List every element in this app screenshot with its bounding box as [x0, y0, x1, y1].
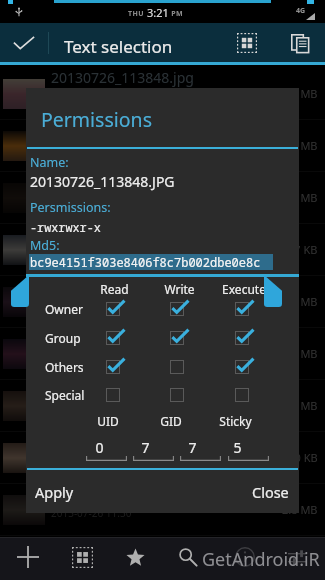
- staticText: -rwxrwxr-x: [30, 219, 101, 235]
- staticText: 2013-07-26 11:32: [51, 402, 132, 416]
- staticText: Apply: [35, 482, 74, 502]
- button[interactable]: Group write: [164, 325, 190, 351]
- staticText: Persmissions:: [30, 199, 111, 216]
- staticText: Close: [252, 482, 289, 502]
- button[interactable]: Special execute: [229, 382, 255, 408]
- button[interactable]: Copy: [279, 23, 321, 63]
- staticText: Permissions: [41, 106, 153, 133]
- button[interactable]: Others execute: [229, 354, 255, 380]
- staticText: 2013-07-26 11:37: [51, 142, 132, 156]
- button[interactable]: Select all: [226, 23, 268, 63]
- button[interactable]: Special read: [100, 382, 126, 408]
- staticText: Text selection: [64, 35, 173, 57]
- staticText: 3.6 MB: [282, 294, 318, 309]
- staticText: 7: [188, 438, 197, 456]
- staticText: 2013-07-26 11:35: [51, 246, 132, 260]
- button[interactable]: Search: [167, 536, 209, 578]
- staticText: 5: [233, 438, 242, 456]
- staticText: 20130726_113845.jpg: [51, 224, 194, 243]
- staticText: Execute: [222, 281, 266, 297]
- staticText: Read: [100, 281, 129, 297]
- staticText: Name:: [30, 154, 69, 171]
- staticText: GID: [160, 413, 182, 429]
- staticText: 0: [95, 438, 104, 456]
- staticText: 2.2 MB: [282, 190, 318, 205]
- staticText: bc9e4151f303e8406f8c7b002dbe0e8c: [30, 254, 261, 270]
- staticText: 97 KB: [288, 242, 318, 257]
- staticText: Sticky: [219, 413, 252, 429]
- button[interactable]: Special write: [164, 382, 190, 408]
- button[interactable]: Group read: [100, 325, 126, 351]
- staticText: 2.8 MB: [282, 502, 318, 517]
- button[interactable]: [84, 434, 128, 462]
- staticText: 3:21: [147, 5, 169, 20]
- staticText: 7: [141, 438, 150, 456]
- button[interactable]: Others write: [164, 354, 190, 380]
- button[interactable]: Apply: [26, 470, 163, 513]
- staticText: 2.5 MB: [282, 346, 318, 361]
- staticText: 20130726_113842.jpg: [51, 380, 194, 399]
- button[interactable]: Owner execute: [229, 296, 255, 322]
- staticText: UID: [97, 413, 119, 429]
- staticText: Others: [45, 359, 84, 375]
- staticText: PM: [169, 9, 183, 19]
- staticText: 20130726_113843.jpg: [51, 328, 194, 347]
- staticText: 20130726_113840.jpg: [51, 484, 194, 503]
- staticText: Write: [164, 281, 195, 297]
- button[interactable]: Select all: [61, 536, 103, 578]
- button[interactable]: Done: [2, 23, 46, 63]
- staticText: 970 KB: [282, 450, 318, 465]
- staticText: Owner: [45, 301, 83, 317]
- staticText: 2013-07-26 11:33: [51, 350, 132, 364]
- staticText: Group: [45, 330, 81, 346]
- button[interactable]: Favorites: [114, 536, 156, 578]
- button[interactable]: Others read: [100, 354, 126, 380]
- staticText: 4G: [296, 6, 306, 16]
- staticText: 2013-07-26 11:36: [51, 194, 132, 208]
- button[interactable]: [179, 434, 223, 462]
- button[interactable]: Group execute: [229, 325, 255, 351]
- staticText: 2013-07-26 11:34: [51, 298, 132, 312]
- staticText: 20130726_113847.jpg: [51, 120, 194, 139]
- staticText: 20130726_113846.jpg: [51, 172, 194, 191]
- staticText: Md5:: [30, 237, 60, 254]
- button[interactable]: Close: [163, 470, 300, 513]
- button[interactable]: Owner write: [164, 296, 190, 322]
- button[interactable]: Info: [224, 536, 266, 578]
- staticText: 20130726_113844.jpg: [51, 276, 194, 295]
- staticText: 2013-07-26 11:30: [51, 506, 132, 520]
- staticText: THU: [128, 9, 147, 19]
- button[interactable]: Owner read: [100, 296, 126, 322]
- staticText: GetAndroid.iR: [202, 547, 320, 571]
- button[interactable]: Settings: [276, 536, 318, 578]
- staticText: Special: [45, 387, 85, 403]
- staticText: 2013-07-26 11:31: [51, 454, 132, 468]
- staticText: 1.7 MB: [282, 86, 318, 101]
- staticText: 20130726_113848.JPG: [30, 172, 175, 191]
- staticText: 1.1 MB: [282, 398, 318, 413]
- staticText: 20130726_113848.jpg: [51, 68, 194, 87]
- button[interactable]: [131, 434, 175, 462]
- staticText: 20130726_113841.jpg: [51, 432, 194, 451]
- button[interactable]: Add: [7, 536, 49, 578]
- staticText: 3.1 MB: [282, 138, 318, 153]
- button[interactable]: [226, 434, 270, 462]
